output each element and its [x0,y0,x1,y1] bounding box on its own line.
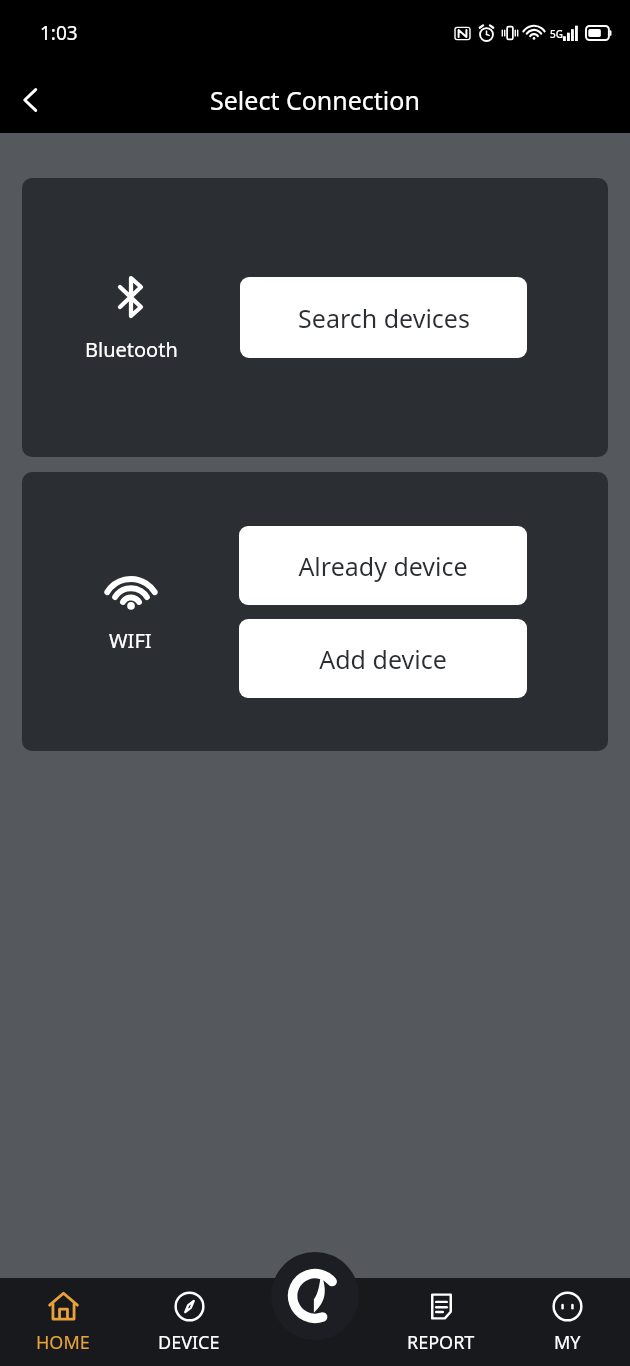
button[interactable]: Scan [271,1252,359,1340]
button[interactable]: HOME [0,1278,126,1366]
staticText: Already device [298,549,468,583]
button[interactable]: Add device [239,619,527,698]
button[interactable]: MY [504,1278,630,1366]
staticText: Select Connection [210,83,420,117]
staticText: Search devices [298,301,470,335]
staticText: 5G [550,27,563,41]
staticText: Bluetooth [85,336,178,363]
button[interactable]: DEVICE [126,1278,252,1366]
staticText: HOME [36,1330,90,1355]
button[interactable]: Back [0,69,62,131]
button[interactable]: Already device [239,526,527,605]
staticText: REPORT [407,1330,475,1355]
button[interactable]: REPORT [378,1278,504,1366]
staticText: MY [554,1330,581,1355]
staticText: DEVICE [158,1330,220,1355]
staticText: 1:03 [40,20,78,46]
staticText: Add device [319,642,447,676]
staticText: WIFI [109,627,152,654]
button[interactable]: Search devices [240,277,527,358]
